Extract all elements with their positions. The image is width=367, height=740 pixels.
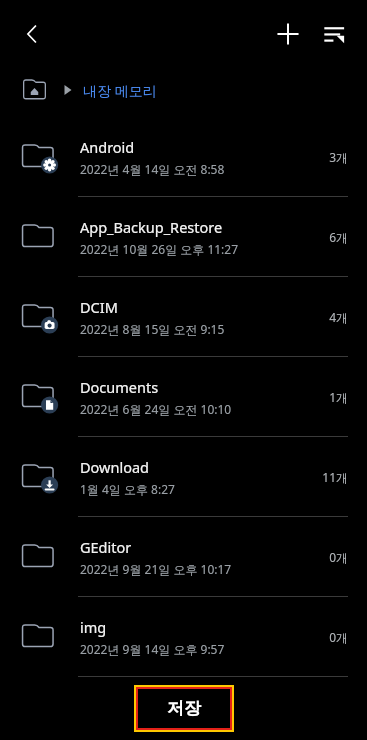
button[interactable]: Back xyxy=(8,10,56,58)
staticText: 2022년 4월 14일 오전 8:58 xyxy=(80,161,225,177)
staticText: 2022년 8월 15일 오전 9:15 xyxy=(80,321,225,337)
staticText: 0개 xyxy=(329,549,348,565)
staticText: 2022년 9월 14일 오후 9:57 xyxy=(80,641,225,657)
button[interactable]: Android xyxy=(0,117,367,196)
staticText: Download xyxy=(80,457,149,477)
staticText: 2022년 10월 26일 오후 11:27 xyxy=(80,241,239,257)
staticText: 1개 xyxy=(329,389,348,405)
staticText: 4개 xyxy=(329,309,348,325)
staticText: 0개 xyxy=(329,629,348,645)
button[interactable]: Documents xyxy=(0,357,367,436)
button[interactable]: img xyxy=(0,597,367,676)
staticText: 6개 xyxy=(329,229,348,245)
staticText: img xyxy=(80,617,107,637)
button[interactable]: Add xyxy=(265,11,311,57)
button[interactable]: Sort xyxy=(311,11,357,57)
button[interactable]: DCIM xyxy=(0,277,367,356)
button[interactable]: 저장 xyxy=(136,687,232,730)
button[interactable]: GEditor xyxy=(0,517,367,596)
staticText: 1월 4일 오후 8:27 xyxy=(80,481,175,497)
staticText: Documents xyxy=(80,377,159,397)
staticText: 11개 xyxy=(322,469,348,485)
staticText: 3개 xyxy=(329,149,348,165)
button[interactable]: App_Backup_Restore xyxy=(0,197,367,276)
staticText: 2022년 6월 24일 오전 10:10 xyxy=(80,401,232,417)
staticText: 내장 메모리 xyxy=(83,81,157,100)
staticText: 2022년 9월 21일 오후 10:17 xyxy=(80,561,232,577)
staticText: App_Backup_Restore xyxy=(80,217,223,237)
staticText: 저장 xyxy=(167,698,201,719)
button[interactable]: Download xyxy=(0,437,367,516)
staticText: GEditor xyxy=(80,537,132,557)
staticText: DCIM xyxy=(80,297,118,317)
button[interactable]: 내장 메모리 xyxy=(0,68,367,112)
staticText: Android xyxy=(80,137,135,157)
